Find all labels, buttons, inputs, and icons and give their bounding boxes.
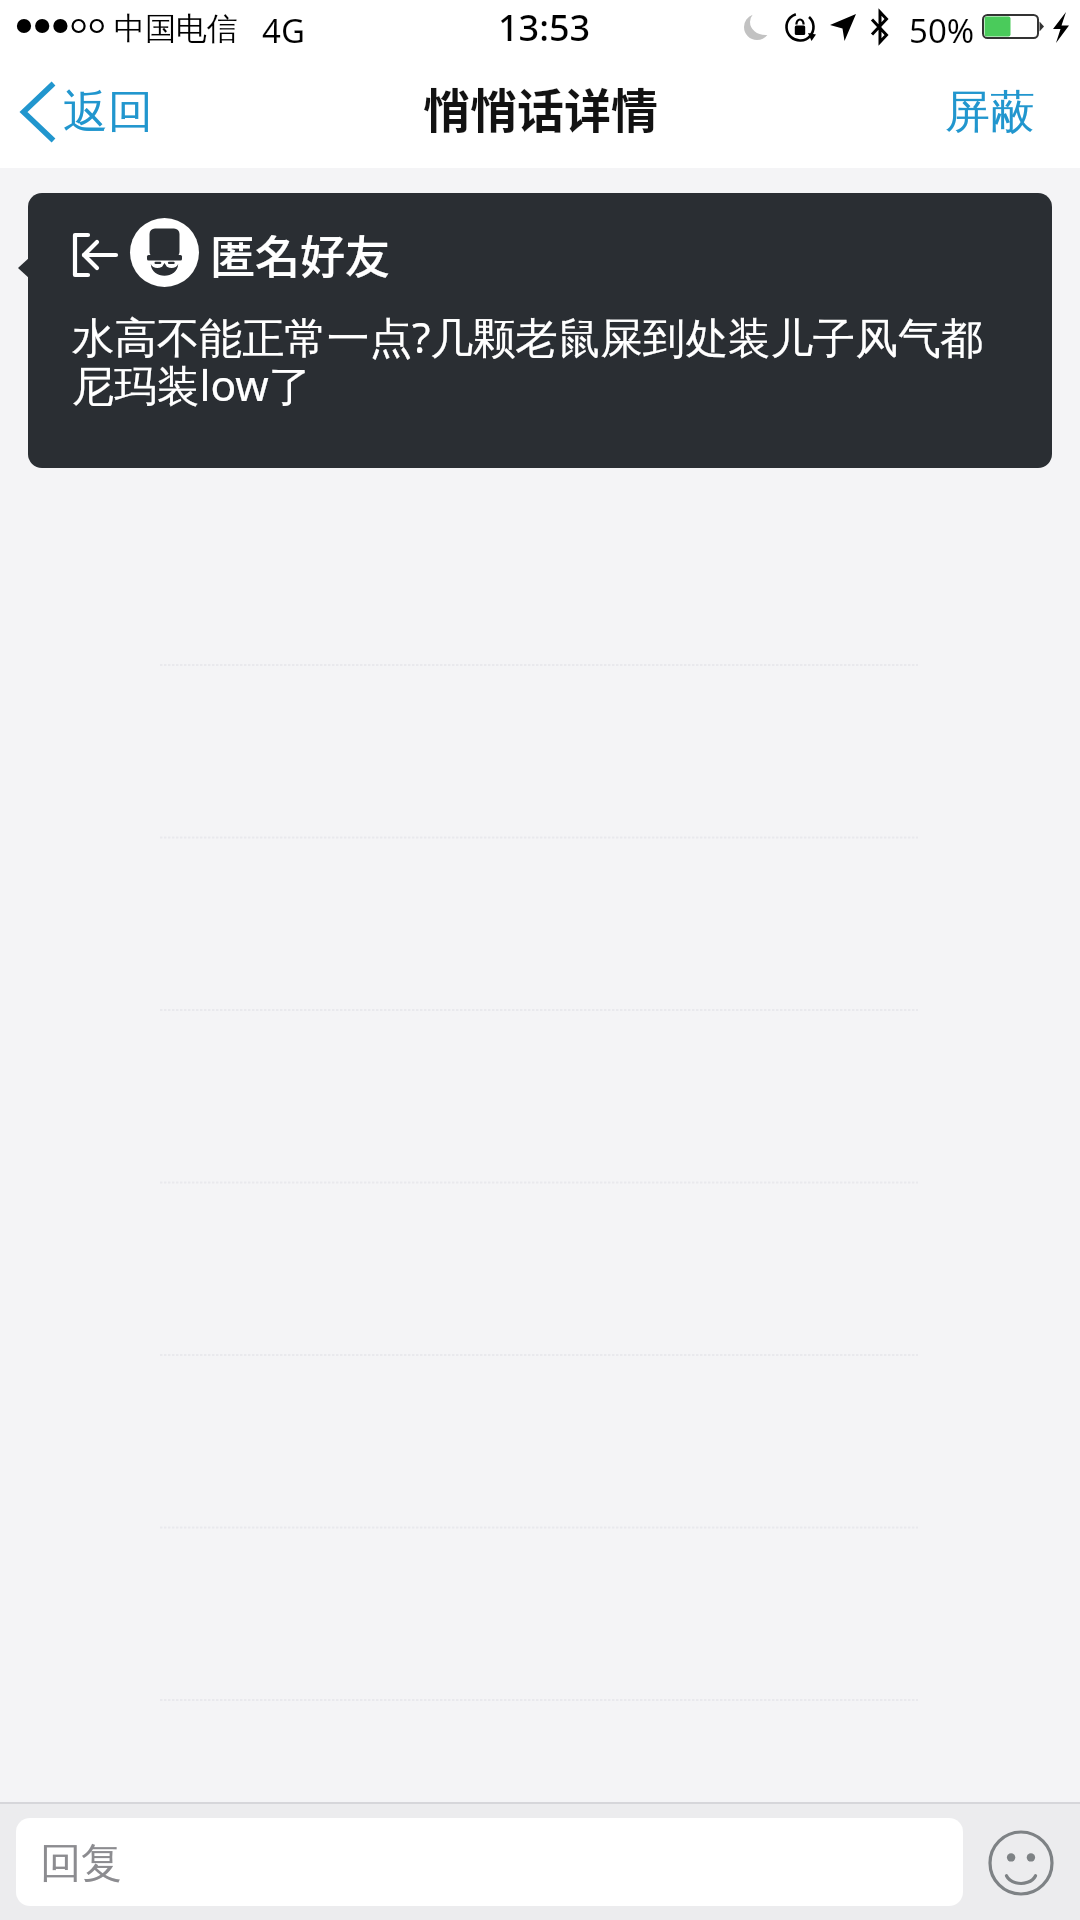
button[interactable]: Anonymous message from 匿名好友: [28, 193, 1052, 468]
staticText: 匿名好友: [210, 222, 391, 287]
staticText: 返回: [63, 84, 153, 141]
button[interactable]: Reply: [16, 1818, 963, 1906]
button[interactable]: Block: [921, 56, 1080, 168]
staticText: 4G: [262, 8, 305, 53]
button[interactable]: Back: [0, 56, 179, 168]
staticText: 悄悄话详情: [423, 73, 658, 141]
staticText: 水高不能正常一点?几颗老鼠屎到处装儿子风气都尼玛装low了: [72, 308, 1022, 414]
staticText: 中国电信: [114, 9, 238, 48]
staticText: 13:53: [498, 3, 591, 52]
staticText: 50%: [909, 8, 975, 53]
button[interactable]: Emoji: [988, 1830, 1054, 1896]
staticText: 回复: [40, 1838, 122, 1890]
staticText: 屏蔽: [945, 84, 1035, 141]
